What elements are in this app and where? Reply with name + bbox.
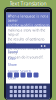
staticText: the results of getting to know [7,37,44,46]
staticText: Sound [8,49,18,54]
staticText: making a story with the help of [7,28,45,37]
staticText: Copy [8,56,16,60]
staticText: Text Translation [9,0,46,7]
staticText: you can do it yourself. [7,55,43,59]
staticText: the devices simply and easily [7,46,45,55]
staticText: Share [8,63,17,67]
staticText: Google Search [8,69,31,74]
staticText: When a language is not a barrier [7,14,48,23]
staticText: Clear [8,76,16,80]
staticText: friendlier place to live in. [7,32,47,36]
staticText: and the world is getting to be a [7,23,49,32]
